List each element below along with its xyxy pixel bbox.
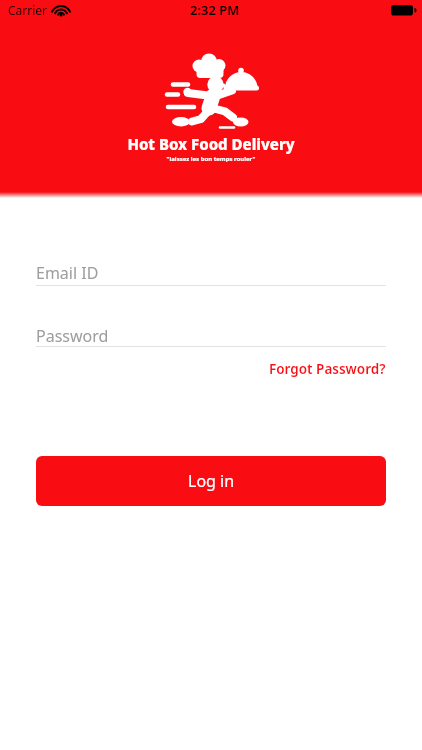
staticText: Log in (188, 470, 235, 492)
staticText: Hot Box Food Delivery (0, 134, 422, 154)
button[interactable]: Log in (36, 456, 386, 506)
button[interactable]: Email ID (36, 262, 386, 292)
staticText: Carrier (8, 2, 48, 18)
staticText: "laissez les bon temps rouler" (0, 155, 422, 163)
staticText: Password (36, 325, 109, 347)
staticText: 2:32 PM (190, 1, 240, 19)
staticText: Email ID (36, 262, 99, 284)
button[interactable]: Password (36, 325, 386, 355)
button[interactable]: Forgot Password? (269, 360, 386, 378)
